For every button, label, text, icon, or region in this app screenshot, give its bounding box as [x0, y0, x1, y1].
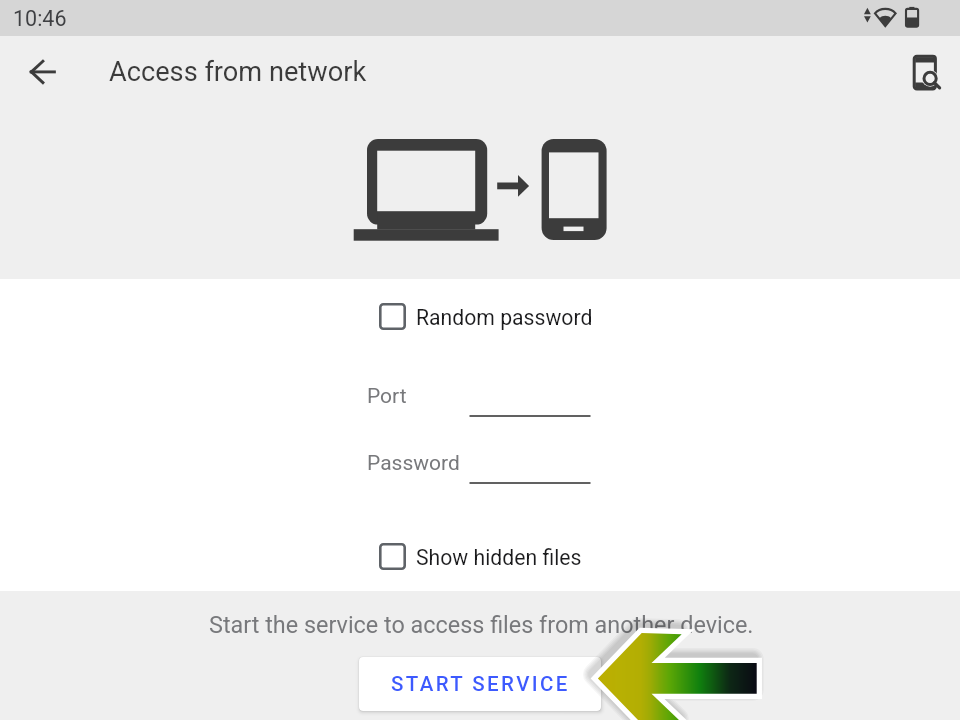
- button[interactable]: START SERVICE: [359, 657, 601, 711]
- staticText: Random password: [416, 305, 593, 330]
- button[interactable]: Random password: [379, 303, 593, 330]
- button[interactable]: Back: [14, 44, 70, 100]
- staticText: Show hidden files: [416, 545, 582, 570]
- button[interactable]: Show hidden files: [379, 543, 582, 570]
- staticText: 10:46: [13, 6, 67, 31]
- staticText: Start the service to access files from a…: [209, 611, 754, 638]
- button[interactable]: Scan device: [900, 45, 956, 101]
- staticText: START SERVICE: [391, 672, 570, 696]
- button[interactable]: Port input field: [469, 388, 591, 418]
- staticText: Password: [367, 451, 460, 476]
- staticText: Port: [367, 384, 407, 409]
- button[interactable]: Password input field: [469, 455, 591, 485]
- staticText: Access from network: [109, 56, 367, 88]
